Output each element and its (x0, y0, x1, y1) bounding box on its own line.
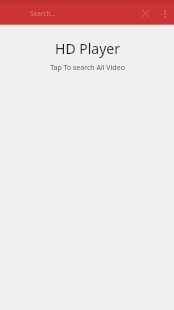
button[interactable]: HD Player (0, 39, 174, 73)
staticText: HD Player (55, 39, 120, 58)
button[interactable]: More options (156, 3, 174, 24)
staticText: Tap To search All Video (50, 63, 125, 73)
button[interactable]: Clear search (135, 3, 156, 24)
button[interactable]: Search... (30, 3, 135, 24)
staticText: Search... (30, 9, 56, 18)
